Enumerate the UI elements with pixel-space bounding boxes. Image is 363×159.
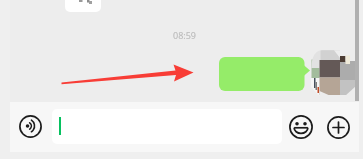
button[interactable]: [52, 109, 282, 144]
staticText: 08:59: [173, 29, 197, 41]
button[interactable]: [219, 57, 310, 91]
button[interactable]: Emoji: [287, 113, 315, 141]
button[interactable]: [65, 0, 101, 12]
button[interactable]: Voice input: [17, 113, 44, 140]
button[interactable]: More options: [324, 113, 352, 141]
